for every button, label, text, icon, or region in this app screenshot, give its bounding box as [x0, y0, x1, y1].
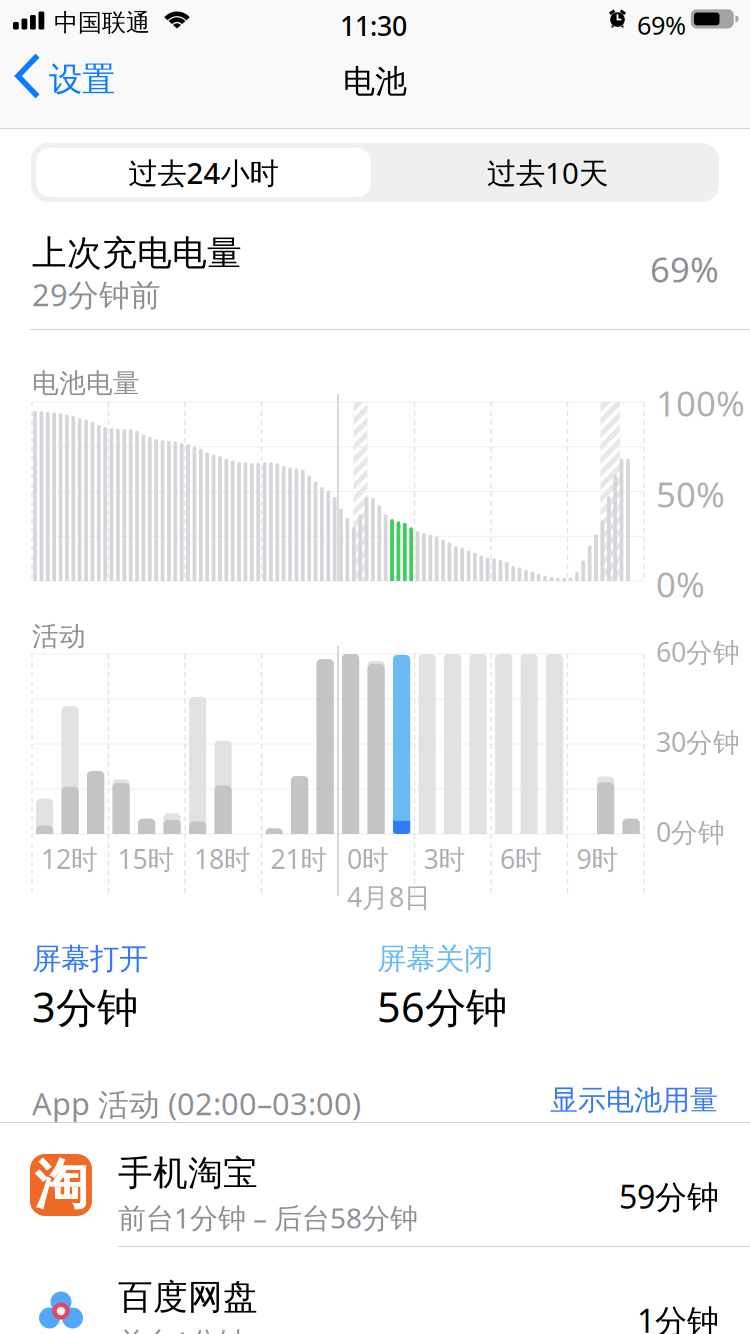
staticText: 过去10天 — [487, 153, 608, 192]
staticText: 电池电量 — [32, 367, 140, 400]
button[interactable]: 过去24小时 — [31, 143, 371, 197]
button[interactable]: 显示电池用量 — [542, 1070, 726, 1130]
staticText: 手机淘宝 — [118, 1152, 258, 1195]
staticText: 30分钟 — [656, 724, 740, 759]
button[interactable]: 设置 — [0, 46, 118, 106]
staticText: 前台1分钟 — [118, 1323, 246, 1334]
staticText: 59分钟 — [619, 1175, 719, 1217]
staticText: 电池 — [343, 62, 407, 101]
staticText: 11:30 — [340, 8, 407, 43]
staticText: 0时 — [347, 841, 389, 876]
staticText: 1分钟 — [637, 1299, 719, 1334]
staticText: 显示电池用量 — [550, 1083, 718, 1117]
staticText: 设置 — [49, 59, 115, 100]
staticText: 18时 — [194, 841, 251, 876]
staticText: 淘 — [34, 1152, 87, 1218]
staticText: 12时 — [41, 841, 98, 876]
staticText: 21时 — [270, 841, 327, 876]
staticText: 3分钟 — [32, 979, 138, 1034]
staticText: 4月8日 — [347, 879, 431, 914]
staticText: 前台1分钟 – 后台58分钟 — [118, 1199, 418, 1236]
staticText: 50% — [656, 471, 725, 517]
staticText: 上次充电电量 — [32, 232, 242, 275]
staticText: 60分钟 — [656, 634, 740, 669]
staticText: 屏幕打开 — [32, 941, 148, 977]
staticText: 0分钟 — [656, 814, 725, 849]
staticText: 29分钟前 — [32, 274, 161, 315]
button[interactable]: 过去10天 — [31, 143, 719, 202]
staticText: 百度网盘 — [118, 1276, 258, 1319]
staticText: 活动 — [32, 620, 86, 653]
staticText: App 活动 (02:00–03:00) — [32, 1083, 361, 1124]
staticText: 过去24小时 — [128, 153, 278, 192]
button[interactable]: 百度网盘 — [0, 1247, 750, 1334]
staticText: 屏幕关闭 — [377, 941, 493, 977]
staticText: 9时 — [576, 841, 618, 876]
staticText: 3时 — [423, 841, 465, 876]
staticText: 69% — [637, 8, 686, 42]
button[interactable]: 淘 — [0, 1123, 750, 1246]
staticText: 100% — [656, 380, 745, 426]
staticText: 69% — [650, 246, 719, 292]
staticText: 56分钟 — [377, 979, 507, 1034]
staticText: 0% — [656, 561, 705, 607]
staticText: 15时 — [117, 841, 174, 876]
staticText: 中国联通 — [54, 8, 150, 37]
staticText: 6时 — [500, 841, 542, 876]
